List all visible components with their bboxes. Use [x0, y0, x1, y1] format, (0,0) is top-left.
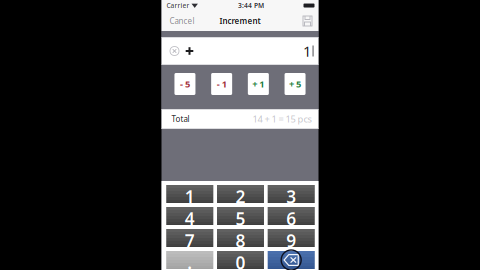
button[interactable]: + 1 [248, 73, 269, 95]
staticText: 8 [235, 229, 245, 244]
button[interactable]: 7 [166, 229, 213, 247]
staticText: 6 [286, 207, 296, 222]
button[interactable]: 8 [217, 229, 264, 247]
staticText: + 5 [289, 78, 301, 90]
button[interactable]: - 1 [211, 73, 232, 95]
staticText: 3 [286, 185, 296, 200]
button[interactable]: Save [296, 11, 318, 31]
staticText: 1 [185, 185, 195, 200]
button[interactable]: Clear [167, 40, 181, 62]
staticText: + 1 [252, 78, 264, 90]
button[interactable]: 6 [268, 207, 314, 225]
staticText: 7 [185, 229, 195, 244]
button[interactable]: 9 [268, 229, 314, 247]
button[interactable]: 1 [166, 185, 213, 203]
button[interactable]: 2 [217, 185, 264, 203]
button[interactable]: 5 [217, 207, 264, 225]
button[interactable]: . [166, 251, 213, 269]
button[interactable]: Delete [268, 251, 314, 269]
button[interactable]: 3 [268, 185, 314, 203]
staticText: 9 [286, 229, 296, 244]
button[interactable]: + 5 [285, 73, 306, 95]
staticText: 1 [303, 41, 311, 61]
button[interactable]: 4 [166, 207, 213, 225]
staticText: Total [171, 114, 189, 124]
staticText: 14 + 1 = 15 pcs [252, 113, 311, 125]
button[interactable]: Cancel [161, 11, 200, 31]
button[interactable]: - 5 [174, 73, 195, 95]
staticText: 0 [235, 251, 245, 266]
staticText: . [187, 251, 192, 266]
staticText: Increment [219, 16, 260, 26]
staticText: 3:44 PM [238, 1, 264, 10]
staticText: 4 [185, 207, 195, 222]
staticText: - 5 [180, 78, 190, 90]
staticText: 5 [235, 207, 245, 222]
staticText: 2 [235, 185, 245, 200]
button[interactable]: 0 [217, 251, 264, 269]
staticText: - 1 [217, 78, 227, 90]
staticText: Carrier [166, 1, 189, 10]
staticText: Cancel [169, 16, 194, 26]
